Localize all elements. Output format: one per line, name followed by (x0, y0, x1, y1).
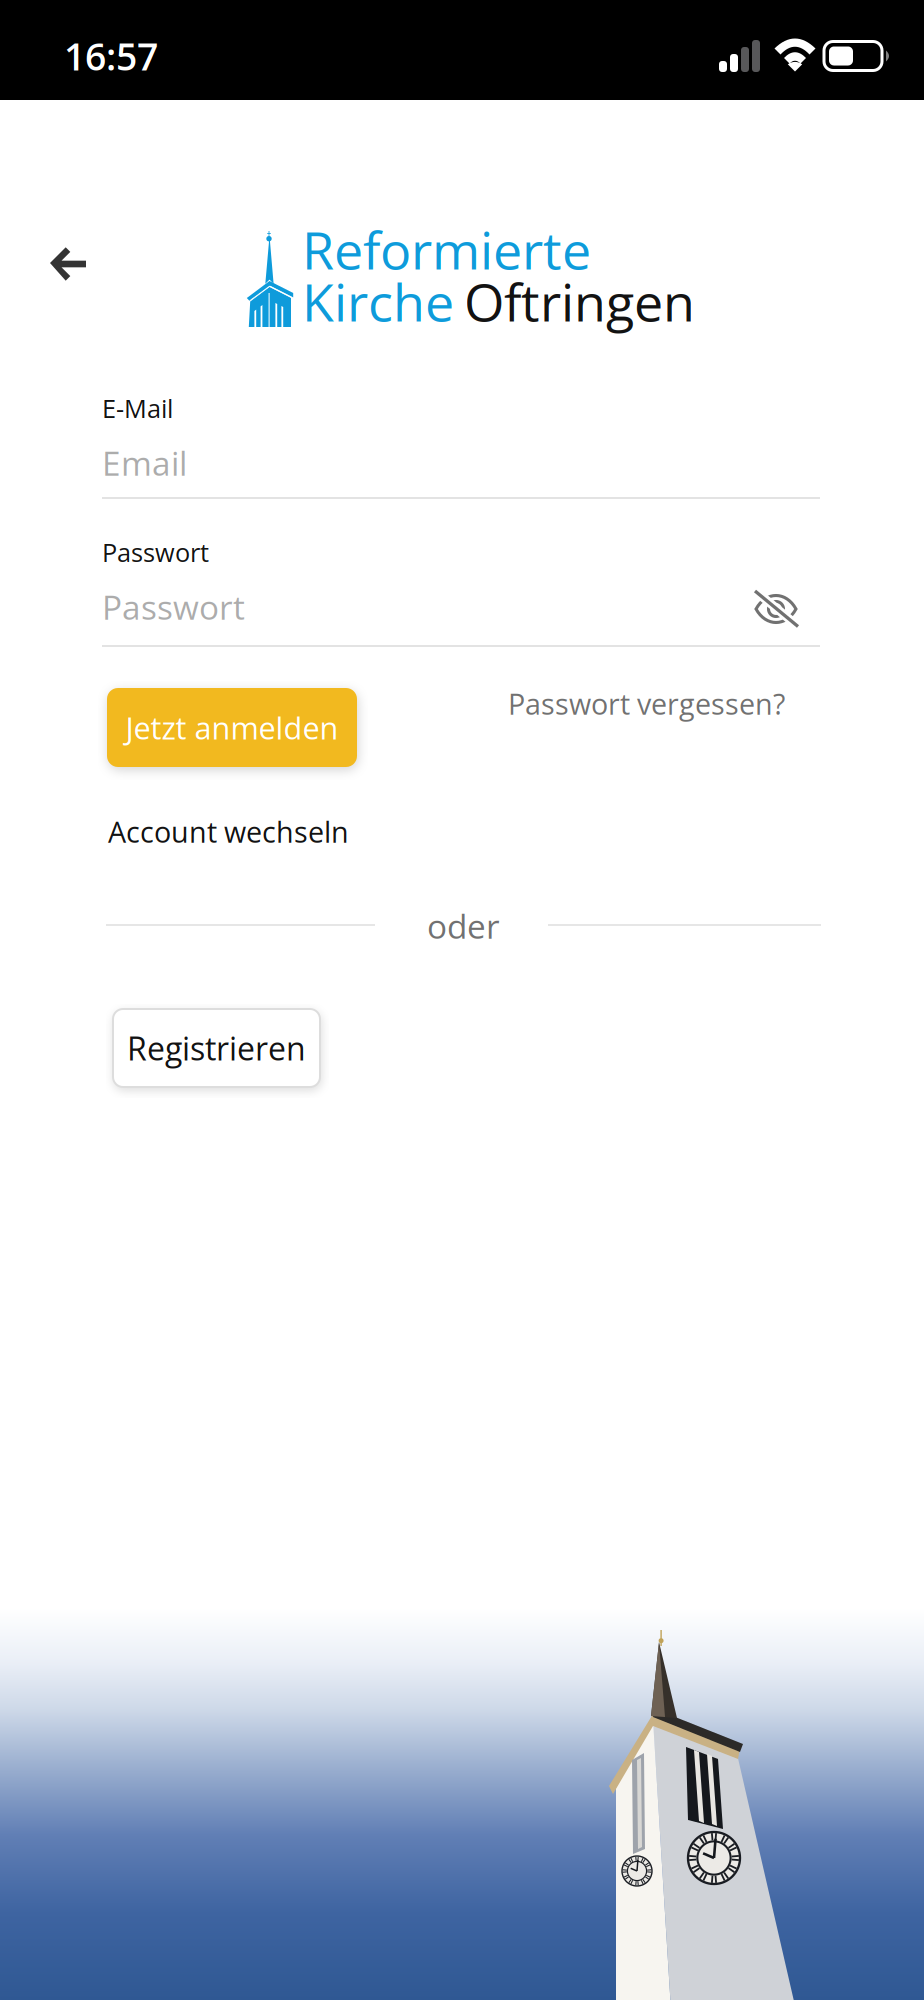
staticText: Jetzt anmelden (125, 707, 338, 748)
staticText: oder (427, 903, 500, 948)
staticText: Oftringen (464, 266, 695, 337)
staticText: 16:57 (64, 31, 158, 81)
button[interactable]: Account wechseln (108, 812, 349, 851)
staticText: Passwort vergessen? (508, 684, 785, 723)
button[interactable]: Back (26, 222, 110, 306)
staticText: Registrieren (127, 1026, 306, 1070)
button[interactable]: Registrieren (113, 1009, 320, 1087)
staticText: Kirche (302, 266, 454, 337)
staticText: E-Mail (102, 391, 173, 425)
staticText: Email (102, 440, 187, 485)
button[interactable]: Jetzt anmelden (107, 688, 357, 767)
staticText: Passwort (102, 584, 245, 629)
staticText: Account wechseln (108, 812, 349, 851)
button[interactable]: Show password (742, 581, 814, 637)
button[interactable]: Passwort vergessen? (508, 684, 785, 723)
staticText: Reformierte (302, 214, 591, 285)
staticText: Passwort (102, 535, 209, 569)
